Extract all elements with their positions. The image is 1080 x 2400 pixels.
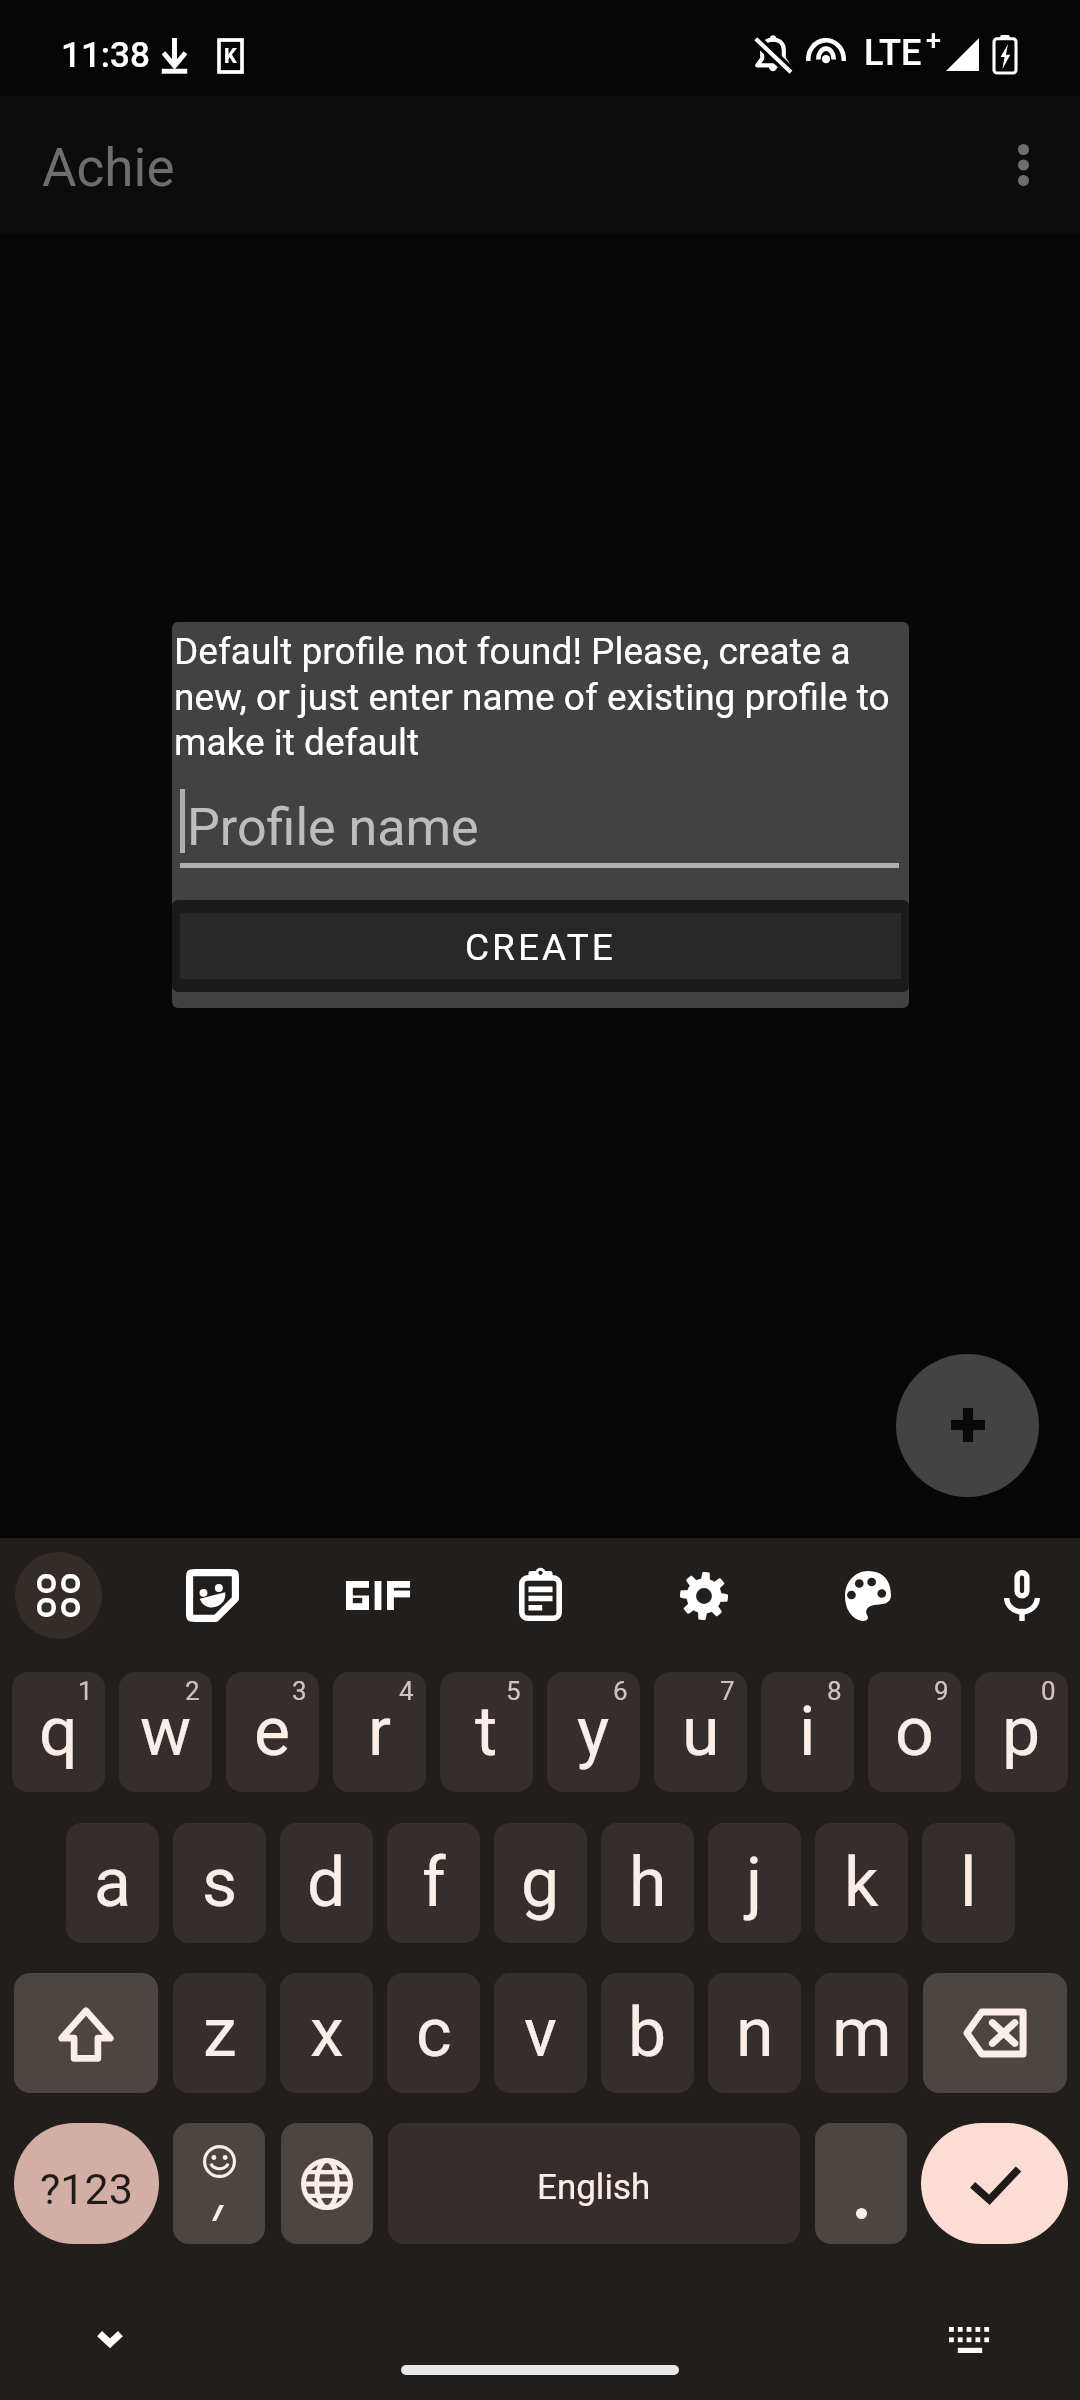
button[interactable]: Backspace <box>923 1973 1067 2093</box>
staticText: j <box>746 1843 763 1923</box>
button[interactable]: Voice input <box>978 1552 1065 1639</box>
staticText: 11:38 <box>61 35 150 76</box>
staticText: t <box>475 1692 498 1772</box>
button[interactable]: o <box>868 1672 961 1792</box>
staticText: 8 <box>827 1676 842 1706</box>
staticText: k <box>844 1843 879 1923</box>
button[interactable]: ?123 <box>14 2123 159 2244</box>
staticText: 9 <box>934 1676 949 1706</box>
staticText: English <box>537 2167 651 2208</box>
button[interactable]: y <box>547 1672 640 1792</box>
staticText: e <box>254 1692 291 1772</box>
button[interactable]: n <box>708 1973 801 2093</box>
button[interactable]: GIF <box>332 1552 419 1639</box>
staticText: Default profile not found! Please, creat… <box>174 630 907 764</box>
staticText: 3 <box>292 1676 307 1706</box>
staticText: 6 <box>613 1676 628 1706</box>
staticText: x <box>310 1993 344 2073</box>
button[interactable]: t <box>440 1672 533 1792</box>
staticText: s <box>202 1843 238 1923</box>
staticText: m <box>832 1993 892 2073</box>
button[interactable]: z <box>173 1973 266 2093</box>
staticText: u <box>682 1692 720 1772</box>
staticText: y <box>577 1692 610 1772</box>
button[interactable] <box>815 2123 907 2244</box>
staticText: a <box>94 1843 131 1923</box>
staticText: q <box>39 1692 78 1772</box>
staticText: K <box>224 44 237 67</box>
button[interactable]: Change language <box>281 2123 373 2244</box>
staticText: r <box>368 1692 392 1772</box>
button[interactable]: CREATE <box>172 900 909 992</box>
button[interactable]: f <box>387 1823 480 1943</box>
button[interactable]: h <box>601 1823 694 1943</box>
staticText: 4 <box>399 1676 414 1706</box>
button[interactable]: Stickers <box>169 1552 256 1639</box>
staticText: ?123 <box>40 2164 133 2214</box>
staticText: LTE <box>864 32 922 74</box>
staticText: z <box>203 1993 237 2073</box>
staticText: CREATE <box>465 926 616 969</box>
staticText: Profile name <box>187 797 479 858</box>
button[interactable]: English <box>388 2123 800 2244</box>
staticText: 0 <box>1041 1676 1056 1706</box>
button[interactable]: Settings <box>660 1552 747 1639</box>
button[interactable]: a <box>66 1823 159 1943</box>
staticText: f <box>422 1843 446 1923</box>
staticText: i <box>799 1692 816 1772</box>
staticText: b <box>628 1993 667 2073</box>
button[interactable]: b <box>601 1973 694 2093</box>
button[interactable]: More options <box>968 110 1078 220</box>
button[interactable]: r <box>333 1672 426 1792</box>
button[interactable]: u <box>654 1672 747 1792</box>
button[interactable]: i <box>761 1672 854 1792</box>
button[interactable]: Emoji <box>173 2123 265 2244</box>
button[interactable]: Enter <box>921 2123 1068 2244</box>
button[interactable]: Switch keyboard <box>922 2292 1018 2388</box>
staticText: l <box>960 1843 977 1923</box>
staticText: w <box>140 1692 192 1772</box>
button[interactable]: w <box>119 1672 212 1792</box>
staticText: v <box>524 1993 557 2073</box>
button[interactable]: Add <box>896 1354 1039 1497</box>
staticText: 7 <box>720 1676 735 1706</box>
button[interactable]: v <box>494 1973 587 2093</box>
button[interactable]: k <box>815 1823 908 1943</box>
staticText: 2 <box>185 1676 200 1706</box>
staticText: n <box>736 1993 774 2073</box>
button[interactable]: p <box>975 1672 1068 1792</box>
staticText: p <box>1002 1692 1041 1772</box>
button[interactable]: c <box>387 1973 480 2093</box>
button[interactable]: q <box>12 1672 105 1792</box>
button[interactable]: j <box>708 1823 801 1943</box>
staticText: 1 <box>78 1676 93 1706</box>
button[interactable]: d <box>280 1823 373 1943</box>
staticText: d <box>307 1843 346 1923</box>
staticText: g <box>521 1843 560 1923</box>
button[interactable]: m <box>815 1973 908 2093</box>
staticText: h <box>629 1843 667 1923</box>
staticText: o <box>895 1692 934 1772</box>
staticText: 5 <box>506 1676 521 1706</box>
button[interactable]: Emoji and app shortcuts <box>15 1552 102 1639</box>
button[interactable]: Hide keyboard <box>62 2292 158 2388</box>
button[interactable]: Shift <box>14 1973 158 2093</box>
button[interactable]: g <box>494 1823 587 1943</box>
button[interactable]: l <box>922 1823 1015 1943</box>
staticText: c <box>416 1993 452 2073</box>
button[interactable]: x <box>280 1973 373 2093</box>
button[interactable]: s <box>173 1823 266 1943</box>
button[interactable]: Clipboard <box>497 1552 584 1639</box>
button[interactable]: e <box>226 1672 319 1792</box>
button[interactable]: Themes <box>824 1552 911 1639</box>
staticText: + <box>926 25 941 57</box>
staticText: Achie <box>42 137 175 199</box>
